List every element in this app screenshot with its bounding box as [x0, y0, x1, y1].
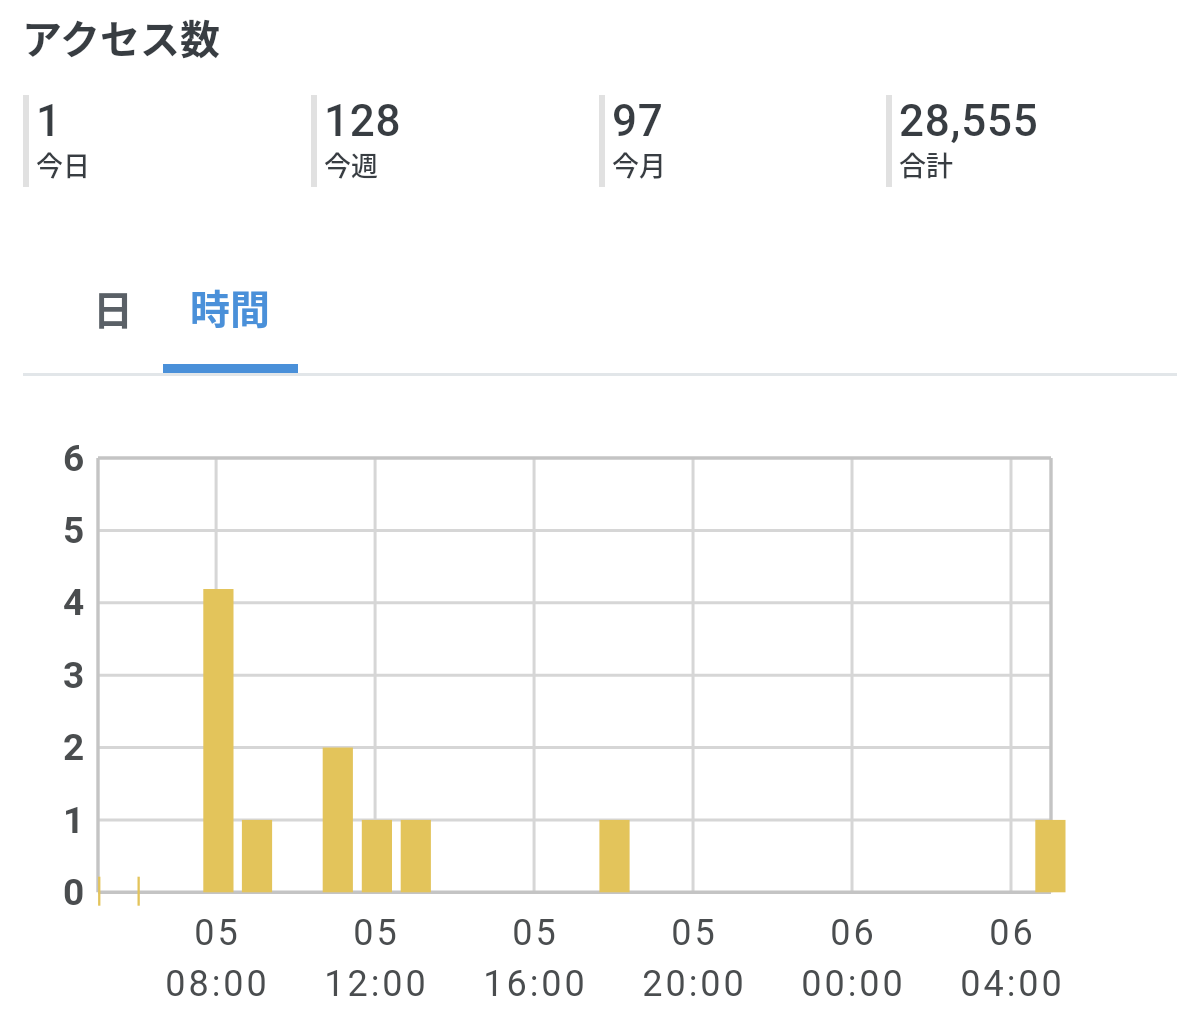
staticText: 08:00	[165, 963, 270, 1005]
staticText: 05	[194, 912, 241, 954]
staticText: アクセス数	[22, 8, 220, 66]
staticText: 1	[36, 95, 62, 147]
staticText: 04:00	[960, 963, 1065, 1005]
staticText: 今週	[324, 145, 378, 184]
staticText: 05	[353, 912, 400, 954]
staticText: 合計	[899, 145, 953, 184]
staticText: 4	[63, 581, 85, 624]
staticText: 6	[63, 437, 85, 480]
button[interactable]: 128	[311, 94, 581, 187]
staticText: 時間	[190, 278, 270, 336]
other: Hourly access histogram	[98, 458, 1073, 914]
staticText: 12:00	[324, 963, 429, 1005]
staticText: 1	[63, 799, 85, 842]
staticText: 05	[512, 912, 559, 954]
staticText: 3	[63, 654, 85, 697]
button[interactable]: 97	[599, 94, 869, 187]
staticText: 日	[93, 279, 133, 337]
staticText: 06	[989, 912, 1036, 954]
staticText: 28,555	[899, 95, 1039, 147]
button[interactable]: 日	[52, 264, 173, 352]
staticText: 00:00	[801, 963, 906, 1005]
staticText: 5	[63, 509, 85, 552]
staticText: 2	[63, 726, 85, 769]
button[interactable]: 1	[23, 94, 293, 187]
staticText: 16:00	[483, 963, 588, 1005]
staticText: 05	[671, 912, 718, 954]
button[interactable]: 28,555	[886, 94, 1156, 187]
staticText: 今月	[612, 145, 666, 184]
staticText: 97	[612, 95, 664, 147]
staticText: 今日	[36, 145, 90, 184]
staticText: 0	[63, 871, 85, 914]
staticText: 128	[324, 95, 402, 147]
staticText: 20:00	[642, 963, 747, 1005]
button[interactable]: 時間	[162, 263, 298, 351]
staticText: 06	[830, 912, 877, 954]
